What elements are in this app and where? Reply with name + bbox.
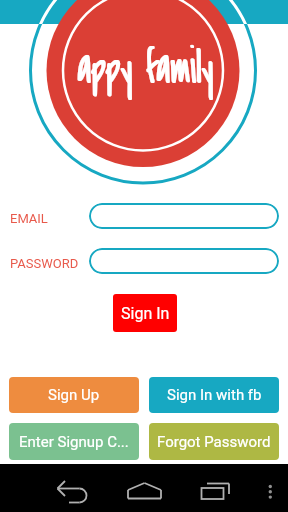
staticText: appy family (77, 35, 213, 101)
button[interactable]: Forgot Password (149, 423, 279, 460)
button[interactable]: More options (255, 473, 285, 503)
staticText: EMAIL (10, 211, 48, 226)
staticText: Forgot Password (157, 433, 271, 451)
button[interactable] (89, 248, 279, 274)
button[interactable]: Back (48, 465, 95, 512)
button[interactable]: Sign Up (9, 377, 139, 413)
button[interactable]: Sign In with fb (149, 377, 279, 413)
staticText: Sign In (121, 304, 170, 323)
button[interactable]: Recent apps (192, 465, 239, 512)
staticText: appy family (78, 35, 214, 101)
staticText: Enter Signup C... (19, 433, 129, 451)
button[interactable]: Sign In (113, 294, 177, 332)
button[interactable] (89, 203, 279, 229)
staticText: Sign In with fb (167, 386, 262, 404)
staticText: Sign Up (48, 386, 100, 404)
button[interactable]: Enter Signup C... (9, 423, 139, 460)
button[interactable]: Home (120, 465, 167, 512)
staticText: PASSWORD (10, 256, 79, 271)
